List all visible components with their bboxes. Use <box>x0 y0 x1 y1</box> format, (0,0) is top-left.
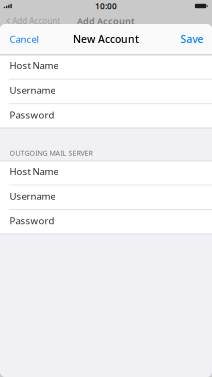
button[interactable]: Password <box>0 104 212 128</box>
staticText: Password <box>9 108 54 121</box>
staticText: OUTGOING MAIL SERVER <box>10 148 93 158</box>
staticText: Cancel <box>9 33 38 45</box>
button[interactable]: Host Name <box>0 161 212 185</box>
button[interactable]: Username <box>0 79 212 104</box>
button[interactable]: Cancel <box>0 24 47 54</box>
staticText: Username <box>9 84 55 96</box>
staticText: Save <box>180 32 203 46</box>
staticText: New Account <box>73 32 139 46</box>
staticText: Host Name <box>9 59 58 72</box>
button[interactable]: Username <box>0 185 212 210</box>
staticText: Add Account <box>12 16 60 26</box>
button[interactable]: Save <box>171 24 212 54</box>
staticText: 10:00 <box>95 0 117 11</box>
button[interactable]: Host Name <box>0 55 212 79</box>
staticText: Password <box>9 214 54 227</box>
staticText: Host Name <box>9 165 58 178</box>
staticText: Add Account <box>77 15 135 27</box>
button[interactable]: Password <box>0 210 212 234</box>
staticText: Username <box>9 190 55 202</box>
